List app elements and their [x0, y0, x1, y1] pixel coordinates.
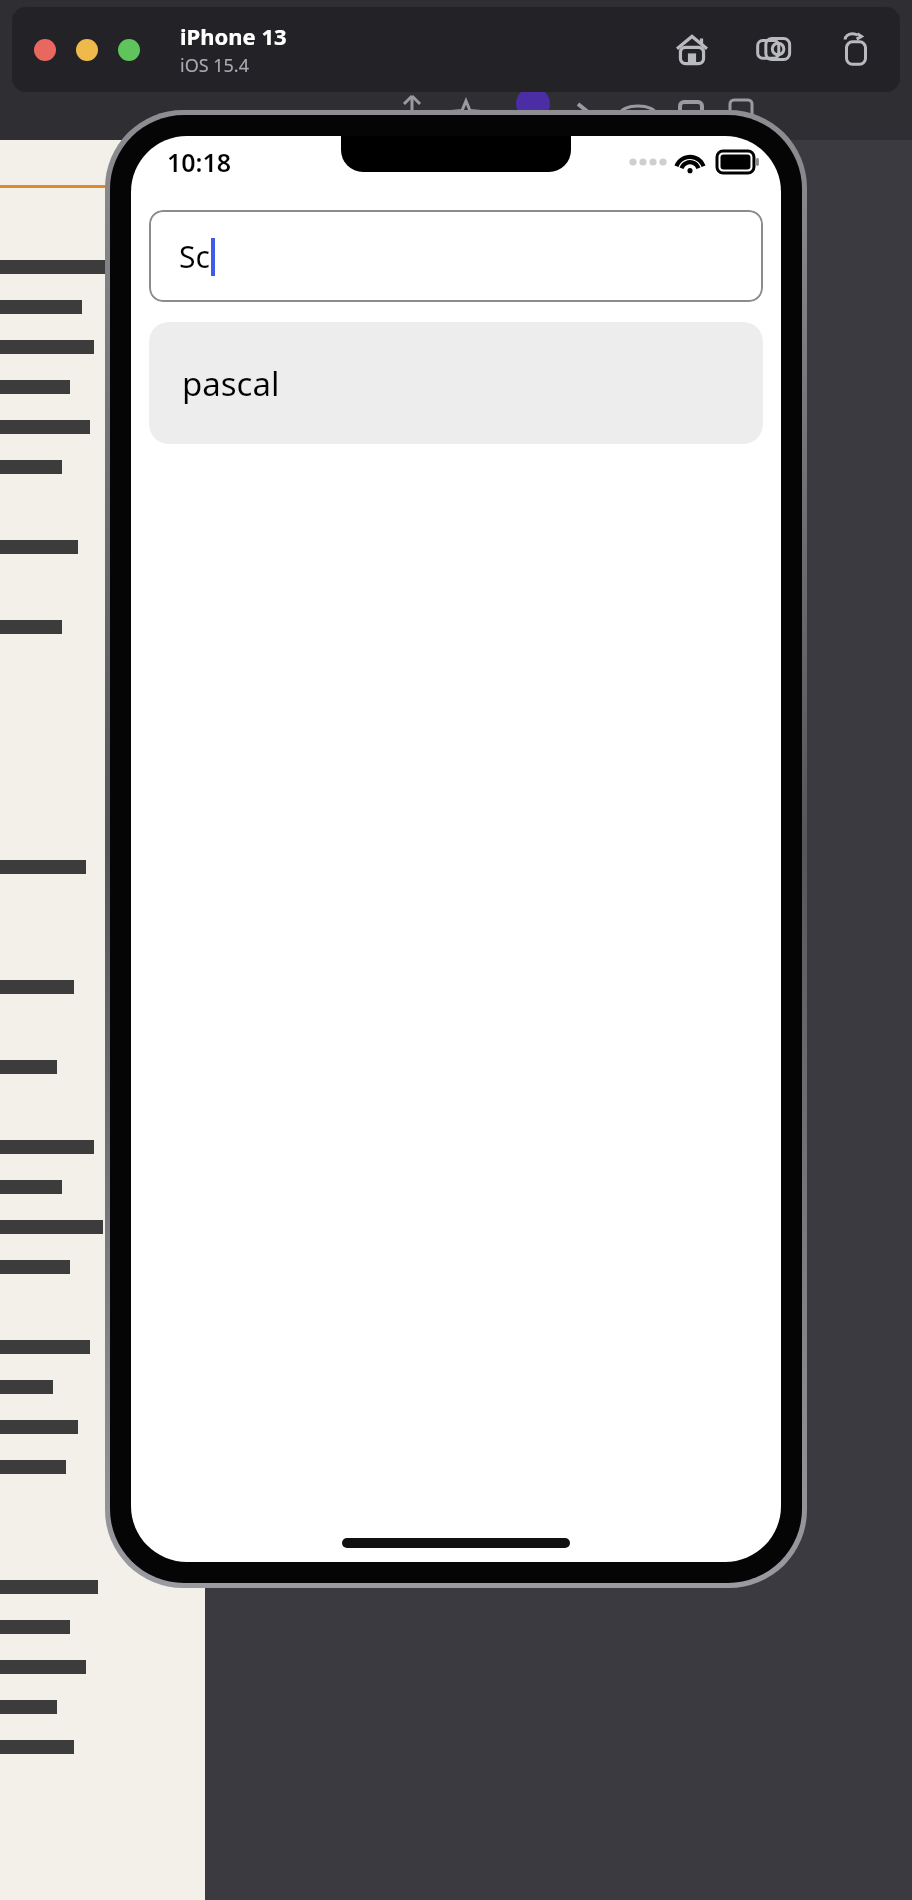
- staticText: iOS 15.4: [180, 53, 249, 78]
- staticText: iPhone 13: [180, 21, 287, 51]
- button[interactable]: Sc: [149, 210, 763, 302]
- button[interactable]: Home: [670, 28, 714, 72]
- button[interactable]: Minimize: [76, 39, 98, 61]
- staticText: Sc: [179, 236, 210, 277]
- button[interactable]: Screenshot: [752, 28, 796, 72]
- button[interactable]: Maximize: [118, 39, 140, 61]
- button[interactable]: Rotate: [834, 28, 878, 72]
- staticText: 10:18: [167, 145, 232, 179]
- button[interactable]: pascal: [149, 322, 763, 444]
- button[interactable]: Close: [34, 39, 56, 61]
- staticText: pascal: [182, 361, 280, 406]
